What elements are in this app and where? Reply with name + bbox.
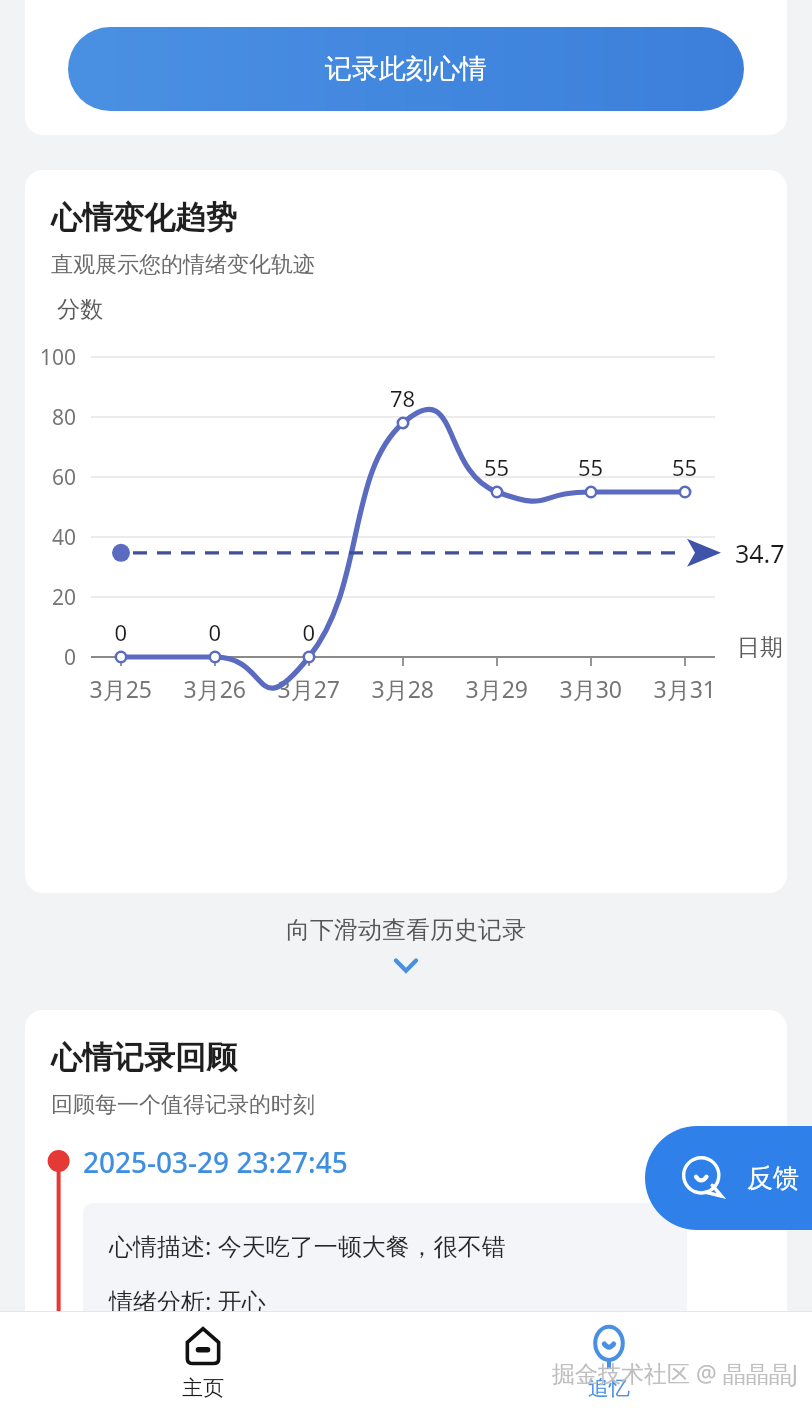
staticText: 反馈 <box>747 1162 799 1195</box>
staticText: 心情变化趋势 <box>51 198 237 237</box>
staticText: 追忆 <box>588 1375 630 1401</box>
button[interactable]: 心情描述: 今天吃了一顿大餐，很不错 <box>83 1203 687 1412</box>
staticText: 主页 <box>182 1375 224 1401</box>
other: 追忆 <box>586 1324 632 1370</box>
other: 反馈 <box>681 1156 725 1200</box>
button[interactable]: 主页 <box>0 1312 406 1412</box>
button[interactable]: 反馈 <box>645 1126 812 1230</box>
staticText: 直观展示您的情绪变化轨迹 <box>51 251 315 279</box>
staticText: 2025-03-29 23:27:45 <box>83 1143 348 1181</box>
staticText: 掘金技术社区 @ 晶晶晶J <box>552 1357 798 1388</box>
staticText: 心情记录回顾 <box>51 1038 237 1077</box>
staticText: 情绪分析: 开心 <box>109 1284 266 1317</box>
other: 主页 <box>180 1324 226 1370</box>
staticText: 向下滑动查看历史记录 <box>286 915 526 945</box>
button[interactable]: 追忆 <box>406 1312 812 1412</box>
staticText: 回顾每一个值得记录的时刻 <box>51 1091 315 1119</box>
staticText: 记录此刻心情 <box>325 52 487 86</box>
staticText: 心情描述: 今天吃了一顿大餐，很不错 <box>109 1229 506 1262</box>
button[interactable]: 记录此刻心情 <box>68 27 744 111</box>
